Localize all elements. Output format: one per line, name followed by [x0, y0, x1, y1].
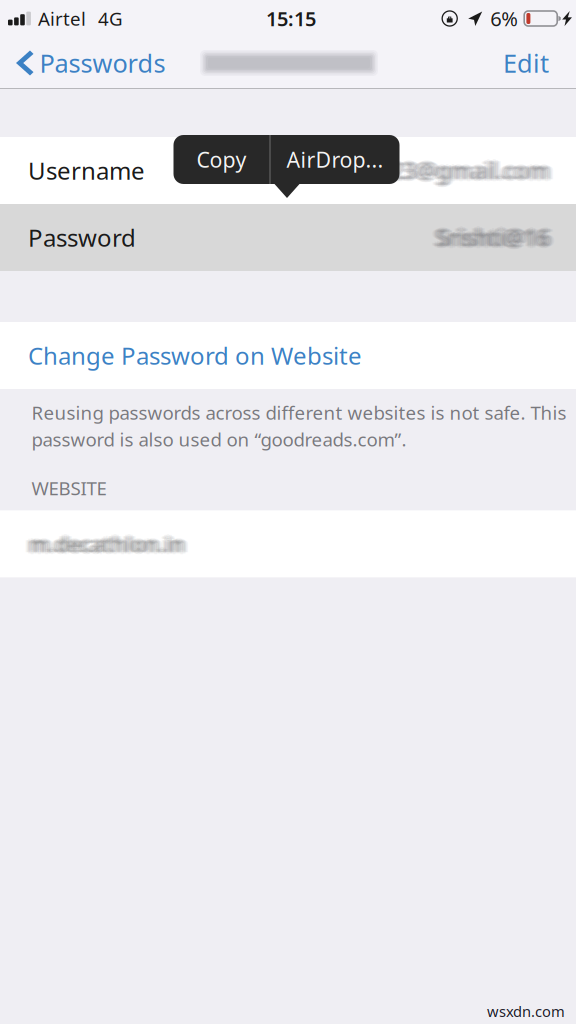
button[interactable]: Passwords — [0, 37, 177, 89]
staticText: m.decathlon.in — [29, 528, 185, 556]
staticText: srishti23@gmail.com — [325, 155, 552, 185]
staticText: Srishti@16 — [431, 222, 545, 252]
staticText: Reusing passwords across different websi… — [31, 400, 566, 425]
staticText: m.decathlon.in — [32, 528, 188, 557]
staticText: m.decathlon.in — [31, 530, 187, 558]
staticText: srishti23@gmail.com — [328, 155, 555, 185]
staticText: m.decathlon.in — [32, 531, 188, 559]
staticText: srishti23@gmail.com — [321, 155, 548, 185]
staticText: Srishti@16 — [434, 222, 548, 252]
staticText: Srishti@16 — [433, 224, 547, 254]
staticText: srishti23@gmail.com — [323, 155, 550, 185]
staticText: m.decathlon.in — [34, 530, 190, 558]
staticText: srishti23@gmail.com — [320, 155, 547, 185]
staticText: Srishti@16 — [433, 222, 547, 252]
staticText: WEBSITE — [31, 476, 106, 500]
staticText: 15:15 — [266, 5, 316, 32]
staticText: Srishti@16 — [436, 222, 550, 252]
staticText: Srishti@16 — [436, 220, 550, 250]
staticText: srishti23@gmail.com — [323, 157, 550, 187]
staticText: m.decathlon.in — [29, 530, 185, 558]
staticText: Copy — [196, 145, 246, 174]
staticText: wsxdn.com — [487, 1001, 565, 1021]
button[interactable]: Password — [0, 204, 576, 271]
button[interactable]: m.decathlon.in — [0, 510, 576, 577]
staticText: m.decathlon.in — [27, 530, 183, 558]
staticText: srishti23@gmail.com — [326, 154, 553, 184]
staticText: m.decathlon.in — [32, 530, 188, 558]
staticText: srishti23@gmail.com — [326, 155, 553, 185]
staticText: password is also used on “goodreads.com”… — [31, 427, 406, 452]
staticText: Edit — [503, 46, 549, 80]
staticText: Srishti@16 — [439, 221, 553, 251]
staticText: srishti23@gmail.com — [320, 157, 547, 187]
button[interactable]: Change Password on Website — [0, 322, 576, 389]
staticText: m.decathlon.in — [26, 531, 182, 559]
staticText: srishti23@gmail.com — [320, 154, 547, 184]
staticText: m.decathlon.in — [26, 528, 182, 557]
staticText: Srishti@16 — [438, 222, 552, 252]
staticText: m.decathlon.in — [29, 532, 185, 560]
staticText: 6% — [490, 5, 518, 32]
button[interactable]: Edit — [481, 37, 576, 89]
staticText: Username — [28, 155, 145, 186]
staticText: srishti23@gmail.com — [323, 153, 550, 183]
staticText: Srishti@16 — [441, 222, 555, 252]
staticText: srishti23@gmail.com — [318, 155, 545, 185]
staticText: Password — [28, 222, 136, 253]
staticText: AirDrop... — [286, 145, 383, 174]
button[interactable]: Username — [0, 137, 576, 204]
staticText: Airtel — [38, 6, 86, 31]
staticText: Srishti@16 — [436, 224, 550, 254]
staticText: m.decathlon.in — [26, 530, 182, 558]
staticText: m.decathlon.in — [24, 530, 180, 558]
staticText: Srishti@16 — [439, 224, 553, 254]
staticText: Srishti@16 — [439, 222, 553, 252]
staticText: Srishti@16 — [433, 221, 547, 251]
staticText: Change Password on Website — [28, 340, 362, 371]
button[interactable]: Copy — [173, 135, 269, 184]
button[interactable]: AirDrop... — [270, 135, 399, 184]
staticText: srishti23@gmail.com — [326, 157, 553, 187]
staticText: Passwords — [39, 46, 165, 80]
staticText: 4G — [98, 6, 123, 31]
